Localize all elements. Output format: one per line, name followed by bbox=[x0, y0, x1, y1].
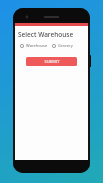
staticText: SUBMIT bbox=[44, 59, 60, 64]
button[interactable]: Grocery bbox=[52, 43, 82, 48]
other: Power button bbox=[90, 55, 91, 67]
staticText: Warehouse bbox=[26, 43, 48, 48]
button[interactable]: SUBMIT bbox=[26, 57, 77, 66]
staticText: Grocery bbox=[58, 43, 73, 48]
staticText: Select Warehouse bbox=[18, 30, 74, 39]
button[interactable]: Warehouse bbox=[20, 43, 52, 48]
